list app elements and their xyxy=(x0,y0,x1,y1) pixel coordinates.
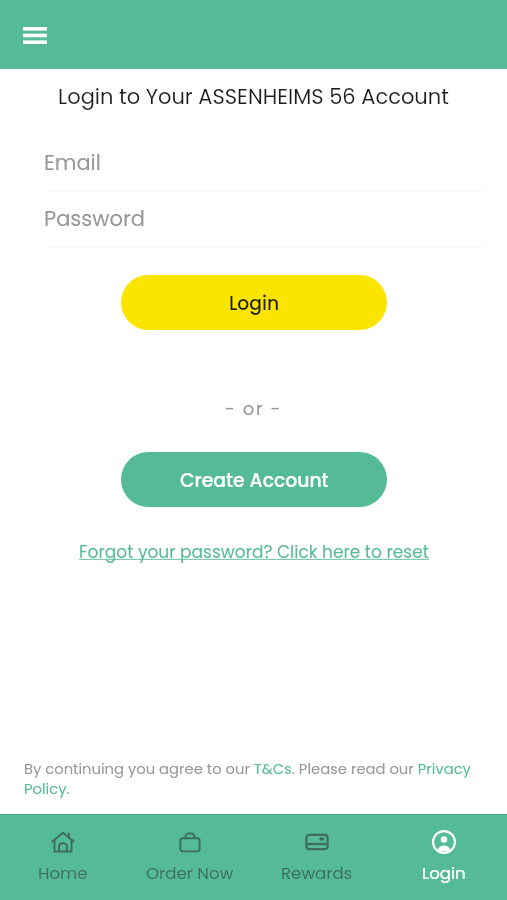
button[interactable]: Forgot your password? Click here to rese… xyxy=(75,538,433,566)
button[interactable]: Password xyxy=(46,198,485,246)
staticText: Create Account xyxy=(180,467,329,493)
staticText: Forgot your password? Click here to rese… xyxy=(79,540,429,564)
staticText: Email xyxy=(44,148,101,177)
staticText: By continuing you agree to our T&Cs. Ple… xyxy=(24,759,485,799)
staticText: Login xyxy=(422,862,466,885)
button[interactable]: Home xyxy=(0,814,126,900)
staticText: Login xyxy=(229,290,280,316)
button[interactable]: Login xyxy=(380,814,507,900)
staticText: Password xyxy=(44,204,145,233)
staticText: Order Now xyxy=(146,862,234,885)
staticText: Home xyxy=(38,862,88,885)
button[interactable]: Login xyxy=(121,275,387,330)
button[interactable]: Email xyxy=(46,142,485,190)
button[interactable]: Menu xyxy=(13,13,57,57)
staticText: - or - xyxy=(0,396,507,421)
button[interactable]: Rewards xyxy=(253,814,380,900)
button[interactable]: Order Now xyxy=(126,814,253,900)
staticText: Login to Your ASSENHEIMS 56 Account xyxy=(0,82,507,111)
staticText: Rewards xyxy=(281,862,353,885)
button[interactable]: Create Account xyxy=(121,452,387,507)
